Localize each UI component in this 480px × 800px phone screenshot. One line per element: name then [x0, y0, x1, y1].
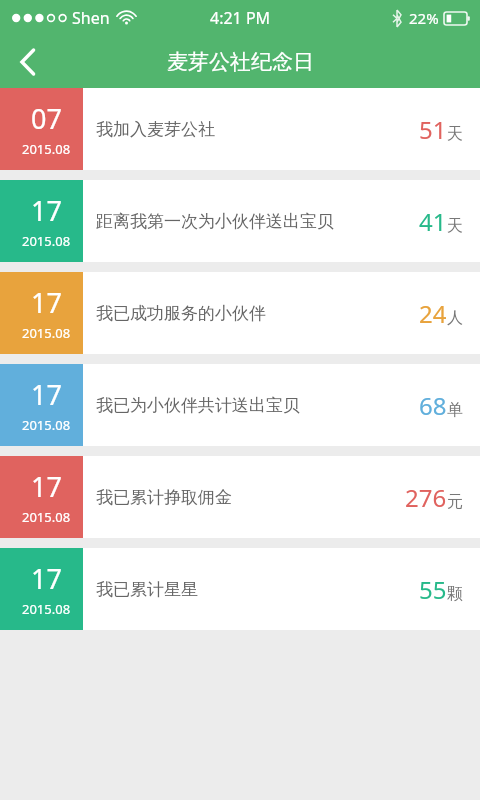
staticText: 276: [405, 481, 447, 514]
staticText: 17: [31, 560, 62, 597]
button[interactable]: 17: [0, 364, 480, 446]
staticText: 距离我第一次为小伙伴送出宝贝: [96, 211, 419, 232]
staticText: 07: [31, 100, 62, 137]
staticText: 17: [31, 284, 62, 321]
staticText: 17: [31, 192, 62, 229]
staticText: 2015.08: [22, 232, 71, 250]
staticText: 2015.08: [22, 416, 71, 434]
staticText: 2015.08: [22, 324, 71, 342]
button[interactable]: 17: [0, 180, 480, 262]
button[interactable]: 17: [0, 272, 480, 354]
staticText: 我加入麦芽公社: [96, 119, 419, 140]
staticText: 4:21 PM: [210, 7, 271, 29]
button[interactable]: 07: [0, 88, 480, 170]
staticText: 24: [419, 297, 447, 330]
button[interactable]: 17: [0, 456, 480, 538]
staticText: Shen: [72, 7, 110, 29]
staticText: 天: [447, 124, 463, 144]
staticText: 17: [31, 468, 62, 505]
staticText: 2015.08: [22, 140, 71, 158]
staticText: 麦芽公社纪念日: [167, 49, 314, 75]
staticText: 68: [419, 389, 447, 422]
staticText: 我已为小伙伴共计送出宝贝: [96, 395, 419, 416]
staticText: 我已累计星星: [96, 579, 419, 600]
button[interactable]: Back: [0, 36, 56, 88]
staticText: 2015.08: [22, 508, 71, 526]
staticText: 51: [419, 113, 447, 146]
button[interactable]: 17: [0, 548, 480, 630]
staticText: 41: [419, 205, 447, 238]
staticText: 2015.08: [22, 600, 71, 618]
staticText: 我已成功服务的小伙伴: [96, 303, 419, 324]
staticText: 我已累计挣取佣金: [96, 487, 405, 508]
staticText: 55: [419, 573, 447, 606]
staticText: 17: [31, 376, 62, 413]
staticText: 单: [447, 400, 463, 420]
staticText: 22%: [409, 8, 439, 28]
staticText: 颗: [447, 584, 463, 604]
staticText: 天: [447, 216, 463, 236]
staticText: 元: [447, 492, 463, 512]
staticText: 人: [447, 308, 463, 328]
